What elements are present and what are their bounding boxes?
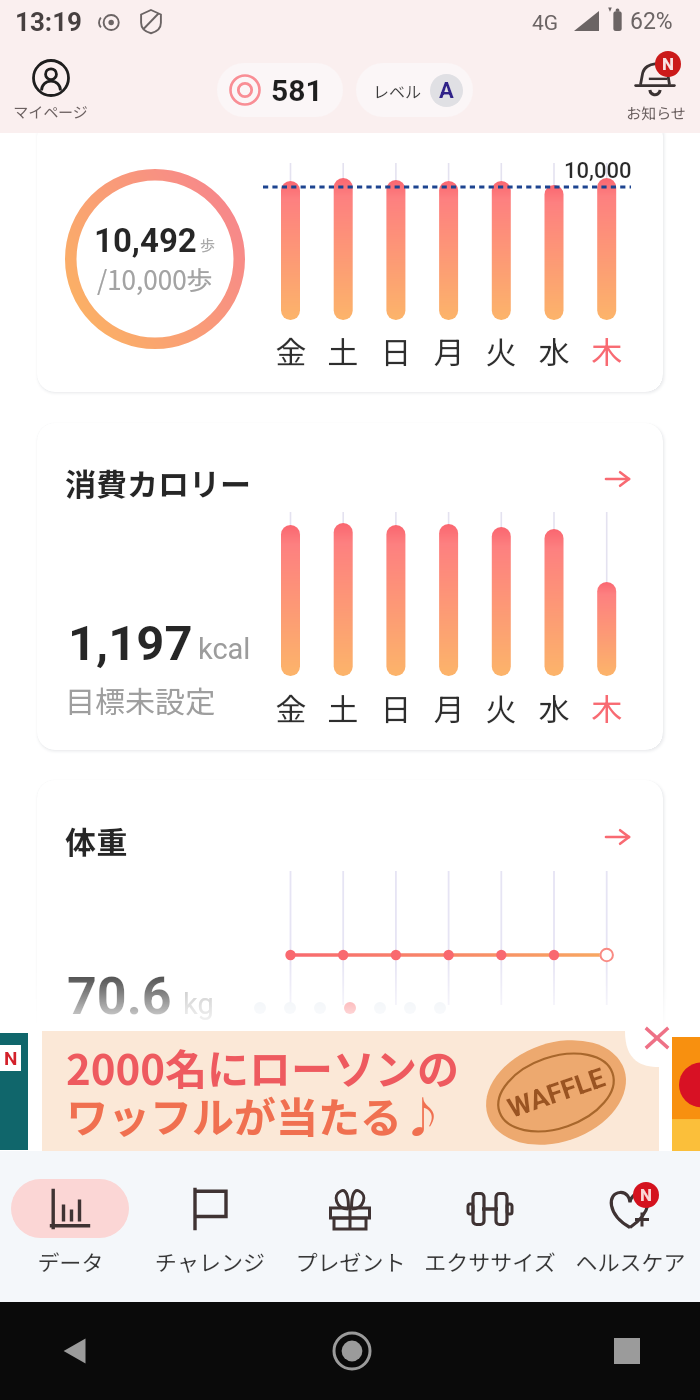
button[interactable]: マイページ: [8, 48, 93, 133]
button[interactable]: プレゼント: [280, 1151, 420, 1302]
button[interactable]: 閉じる: [637, 1018, 677, 1058]
staticText: 火: [481, 685, 521, 730]
button[interactable]: N: [560, 1151, 700, 1302]
button[interactable]: 581: [217, 63, 343, 117]
staticText: N: [4, 1047, 18, 1069]
staticText: 目標未設定: [65, 678, 215, 721]
button[interactable]: レベル: [356, 63, 473, 117]
staticText: お知らせ: [613, 102, 699, 124]
staticText: A: [439, 78, 454, 104]
button[interactable]: 消費カロリー: [37, 423, 663, 750]
staticText: レベル: [373, 79, 422, 102]
staticText: ヘルスケア: [575, 1245, 686, 1277]
staticText: N: [662, 54, 674, 74]
staticText: 10,000: [564, 158, 632, 184]
staticText: 70.6: [67, 966, 172, 1027]
button[interactable]: データ: [0, 1151, 140, 1302]
button[interactable]: チャレンジ: [140, 1151, 280, 1302]
other: 詳細: [605, 824, 631, 850]
staticText: 水: [534, 328, 574, 373]
other: 詳細: [605, 466, 631, 492]
staticText: 金: [271, 328, 311, 373]
other: Back: [60, 1336, 90, 1366]
staticText: 土: [323, 328, 363, 373]
staticText: 10,492: [94, 221, 197, 260]
staticText: 4G: [532, 11, 559, 36]
staticText: 歩: [200, 234, 216, 256]
button[interactable]: 体重: [37, 780, 663, 1107]
staticText: 体重: [65, 818, 127, 863]
button[interactable]: 2000名にローソンの: [42, 1031, 659, 1151]
staticText: 1,197: [68, 615, 193, 672]
staticText: WAFFLE: [503, 1061, 609, 1124]
staticText: 木: [587, 328, 627, 373]
staticText: 62%: [630, 8, 673, 35]
staticText: 水: [534, 685, 574, 730]
staticText: エクササイズ: [424, 1245, 556, 1277]
staticText: ワッフルが当たる♪: [66, 1084, 445, 1145]
staticText: チャレンジ: [155, 1245, 265, 1277]
staticText: マイページ: [8, 101, 93, 123]
staticText: kcal: [198, 632, 251, 666]
staticText: 日: [376, 685, 416, 730]
staticText: 火: [481, 328, 521, 373]
staticText: プレゼント: [295, 1245, 406, 1277]
button[interactable]: 10,492: [37, 118, 663, 392]
other: Home: [332, 1331, 372, 1371]
staticText: 木: [587, 685, 627, 730]
staticText: /10,000歩: [97, 260, 213, 298]
staticText: 金: [271, 685, 311, 730]
staticText: 月: [429, 685, 469, 730]
staticText: N: [640, 1185, 652, 1205]
button[interactable]: エクササイズ: [420, 1151, 560, 1302]
staticText: 月: [429, 328, 469, 373]
staticText: 土: [323, 685, 363, 730]
staticText: データ: [37, 1245, 104, 1277]
button[interactable]: お知らせ: [612, 48, 700, 133]
staticText: 13:19: [15, 7, 82, 37]
staticText: 581: [271, 73, 323, 108]
staticText: 2000名にローソンの: [66, 1036, 460, 1097]
staticText: kg: [183, 987, 214, 1021]
staticText: 消費カロリー: [65, 460, 251, 505]
staticText: 日: [376, 328, 416, 373]
